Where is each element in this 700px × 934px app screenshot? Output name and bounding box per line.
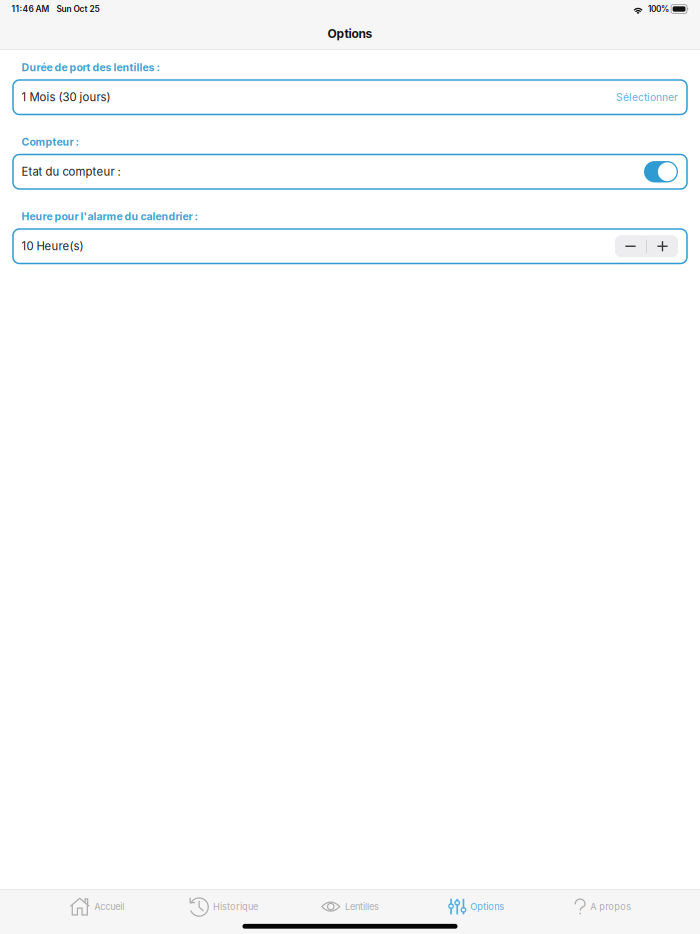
button[interactable]: A propos [540,890,666,924]
button[interactable]: Etat du compteur [644,161,678,182]
staticText: Etat du compteur : [22,165,121,179]
button[interactable]: Accueil [34,890,160,924]
staticText: 10 Heure(s) [22,239,84,253]
staticText: A propos [590,901,631,912]
button[interactable]: Options [413,890,540,924]
staticText: Sélectionner [616,91,678,104]
staticText: Lentilles [345,901,379,912]
staticText: Durée de port des lentilles : [22,61,161,74]
button[interactable]: Historique [160,890,287,924]
staticText: Options [470,901,504,912]
staticText: Accueil [94,901,124,912]
staticText: Heure pour l'alarme du calendrier : [22,210,199,223]
staticText: 100% [648,4,669,14]
button[interactable]: Sélectionner [616,80,687,114]
button[interactable]: Diminuer [615,235,646,257]
button[interactable]: Lentilles [287,890,413,924]
staticText: 1 Mois (30 jours) [22,90,111,104]
staticText: Compteur : [22,136,80,148]
staticText: Historique [213,901,258,912]
staticText: Sun Oct 25 [56,4,99,14]
button[interactable]: Augmenter [647,235,678,257]
staticText: 11:46 AM [11,4,49,14]
staticText: Options [327,26,372,41]
